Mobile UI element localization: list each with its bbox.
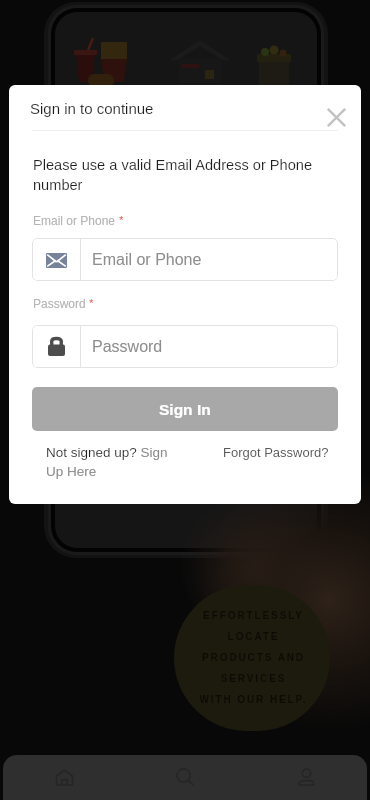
staticText: Email or Phone <box>92 251 202 269</box>
button[interactable]: Email or Phone <box>32 238 338 281</box>
staticText: EFFORTLESSLY LOCATE PRODUCTS AND SERVICE… <box>199 610 308 705</box>
button[interactable]: Not signed up? Sign Up Here <box>46 445 178 479</box>
staticText: Password <box>92 338 163 356</box>
staticText: Password <box>33 297 86 310</box>
staticText: * <box>89 297 94 310</box>
staticText: Please use a valid Email Address or Phon… <box>33 157 323 193</box>
button[interactable]: Password <box>32 325 338 368</box>
staticText: Sign In <box>159 401 211 418</box>
staticText: * <box>119 214 124 227</box>
staticText: Email or Phone <box>33 214 116 227</box>
button[interactable]: Sign In <box>32 387 338 431</box>
staticText: Sign in to continue <box>30 100 154 117</box>
button[interactable]: Profile <box>246 755 367 800</box>
button[interactable]: Forgot Password? <box>223 445 329 460</box>
staticText: Not signed up? Sign Up Here <box>46 445 178 479</box>
button[interactable]: Close <box>320 101 352 133</box>
button[interactable]: Home <box>3 755 125 800</box>
staticText: Forgot Password? <box>223 445 329 460</box>
